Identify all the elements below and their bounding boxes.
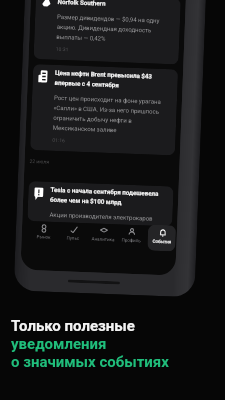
button[interactable]: Аналитика: [88, 222, 117, 249]
staticText: Пульс: [66, 235, 80, 241]
staticText: 01:16: [52, 137, 65, 143]
staticText: Цена нефти Brent превысила $43 впервые с…: [54, 69, 169, 90]
staticText: Только полезные: [11, 317, 135, 335]
button[interactable]: Цена нефти Brent превысила $43 впервые с…: [30, 64, 178, 155]
staticText: Рынок: [37, 234, 51, 240]
staticText: 10:31: [56, 46, 69, 52]
staticText: уведомления: [11, 335, 107, 353]
staticText: Профиль: [121, 237, 142, 243]
button[interactable]: Norfolk Southern: [33, 0, 181, 64]
staticText: Размер дивидендов — $0,94 на одну акцию.…: [56, 13, 171, 44]
staticText: Tesla с начала сентября подешевела более…: [50, 186, 165, 207]
button[interactable]: Tesla с начала сентября подешевела более…: [27, 181, 174, 226]
button[interactable]: Профиль: [117, 223, 146, 250]
button[interactable]: Рынок: [29, 220, 58, 247]
staticText: о значимых событиях: [11, 353, 169, 371]
button[interactable]: Пульс: [58, 221, 87, 248]
staticText: Акции производителя электрокаров: [49, 211, 154, 222]
staticText: 22 июля: [29, 158, 50, 165]
staticText: События: [152, 239, 172, 244]
staticText: Рост цен происходит на фоне урагана «Сал…: [53, 94, 168, 135]
button[interactable]: События: [147, 224, 176, 252]
staticText: Norfolk Southern: [58, 0, 106, 7]
staticText: Аналитика: [91, 236, 115, 242]
